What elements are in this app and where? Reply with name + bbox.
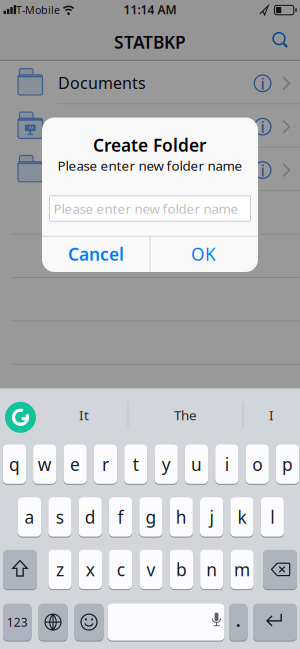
- button[interactable]: I: [244, 395, 299, 435]
- button[interactable]: p: [276, 444, 299, 484]
- staticText: Cancel: [68, 242, 124, 265]
- staticText: u: [191, 453, 202, 476]
- staticText: t: [133, 453, 139, 476]
- staticText: l: [270, 505, 274, 528]
- button[interactable]: i: [215, 444, 238, 484]
- button[interactable]: Shift: [3, 549, 37, 590]
- staticText: Create Folder: [93, 133, 207, 156]
- button[interactable]: x: [79, 549, 102, 590]
- staticText: m: [234, 558, 250, 581]
- staticText: h: [176, 505, 187, 528]
- button[interactable]: Cancel: [42, 236, 149, 272]
- button[interactable]: b: [170, 549, 193, 590]
- button[interactable]: More info: [251, 71, 275, 95]
- button[interactable]: o: [246, 444, 269, 484]
- button[interactable]: The: [130, 395, 240, 435]
- staticText: q: [9, 453, 20, 476]
- button[interactable]: d: [79, 497, 102, 537]
- button[interactable]: Grammarly: [5, 402, 36, 433]
- staticText: The: [174, 406, 197, 424]
- button[interactable]: Space: [107, 603, 224, 641]
- button[interactable]: More info: [251, 115, 275, 139]
- staticText: It: [79, 406, 89, 424]
- staticText: i: [261, 160, 265, 181]
- button[interactable]: Period: [229, 603, 247, 641]
- staticText: 123: [7, 614, 28, 630]
- staticText: i: [261, 73, 265, 94]
- button[interactable]: u: [185, 444, 208, 484]
- staticText: b: [176, 558, 187, 581]
- staticText: z: [56, 558, 64, 581]
- button[interactable]: n: [200, 549, 223, 590]
- button[interactable]: [0, 147, 300, 191]
- button[interactable]: Folder name: [49, 196, 250, 221]
- button[interactable]: c: [109, 549, 132, 590]
- staticText: d: [85, 505, 96, 528]
- button[interactable]: [0, 104, 300, 147]
- button[interactable]: [0, 60, 300, 104]
- button[interactable]: m: [230, 549, 254, 590]
- button[interactable]: y: [155, 444, 178, 484]
- staticText: e: [70, 453, 80, 476]
- staticText: I: [269, 406, 274, 424]
- button[interactable]: It: [42, 395, 126, 435]
- button[interactable]: w: [33, 444, 56, 484]
- staticText: STATBKP: [114, 30, 186, 53]
- staticText: Please enter new folder name: [57, 157, 242, 174]
- button[interactable]: l: [261, 497, 284, 537]
- staticText: a: [24, 505, 34, 528]
- button[interactable]: Return: [253, 603, 297, 641]
- staticText: i: [261, 116, 265, 137]
- button[interactable]: q: [3, 444, 26, 484]
- staticText: y: [162, 453, 171, 476]
- staticText: Please enter new folder name: [53, 200, 238, 217]
- button[interactable]: a: [18, 497, 41, 537]
- staticText: s: [56, 505, 64, 528]
- button[interactable]: Search: [266, 27, 296, 57]
- button[interactable]: g: [139, 497, 162, 537]
- staticText: v: [147, 558, 156, 581]
- button[interactable]: t: [124, 444, 147, 484]
- staticText: j: [210, 505, 214, 528]
- button[interactable]: Emoji: [74, 603, 103, 641]
- staticText: g: [145, 505, 156, 528]
- staticText: c: [117, 558, 125, 581]
- button[interactable]: f: [109, 497, 132, 537]
- button[interactable]: v: [139, 549, 163, 590]
- button[interactable]: r: [94, 444, 117, 484]
- button[interactable]: More info: [251, 158, 275, 182]
- button[interactable]: e: [63, 444, 87, 484]
- staticText: p: [282, 453, 293, 476]
- button[interactable]: Delete: [263, 549, 297, 590]
- staticText: x: [86, 558, 95, 581]
- button[interactable]: s: [48, 497, 71, 537]
- staticText: i: [225, 453, 229, 476]
- button[interactable]: h: [170, 497, 193, 537]
- staticText: w: [38, 453, 52, 476]
- button[interactable]: z: [48, 549, 72, 590]
- staticText: n: [206, 558, 217, 581]
- button[interactable]: 123: [3, 603, 31, 641]
- button[interactable]: Next keyboard: [38, 603, 67, 641]
- staticText: r: [102, 453, 109, 476]
- staticText: k: [237, 505, 246, 528]
- button[interactable]: OK: [150, 236, 257, 272]
- staticText: o: [252, 453, 262, 476]
- staticText: 11:14 AM: [123, 2, 176, 18]
- staticText: T-Mobile: [16, 3, 60, 17]
- staticText: OK: [191, 242, 216, 265]
- button[interactable]: j: [200, 497, 223, 537]
- staticText: f: [118, 505, 124, 528]
- staticText: Documents: [58, 72, 146, 93]
- button[interactable]: k: [230, 497, 254, 537]
